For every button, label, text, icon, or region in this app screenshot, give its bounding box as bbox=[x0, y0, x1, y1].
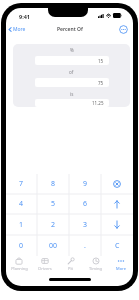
button[interactable]: . bbox=[69, 235, 101, 256]
staticText: 0 bbox=[19, 241, 24, 251]
button[interactable]: Next field bbox=[101, 214, 133, 235]
button[interactable]: Planning bbox=[6, 254, 32, 276]
staticText: Timing bbox=[89, 266, 102, 271]
button[interactable]: More bbox=[108, 254, 133, 276]
button[interactable]: 2 bbox=[37, 214, 69, 235]
staticText: 9:41 bbox=[19, 13, 30, 20]
button[interactable]: Options bbox=[119, 25, 128, 34]
staticText: is bbox=[70, 91, 74, 97]
button[interactable]: More bbox=[7, 24, 27, 35]
staticText: 11.25 bbox=[92, 100, 104, 106]
staticText: C bbox=[115, 241, 120, 251]
staticText: % bbox=[70, 47, 74, 53]
button[interactable]: 0 bbox=[6, 235, 37, 256]
staticText: 6 bbox=[83, 199, 88, 209]
staticText: 00 bbox=[49, 241, 58, 251]
button[interactable]: 6 bbox=[69, 194, 101, 214]
button[interactable]: Backspace bbox=[101, 174, 133, 194]
button[interactable]: 75 bbox=[35, 78, 109, 87]
staticText: 75 bbox=[98, 80, 104, 86]
button[interactable]: 11.25 bbox=[35, 99, 109, 107]
staticText: 3 bbox=[83, 220, 88, 230]
staticText: 9 bbox=[83, 179, 88, 189]
staticText: 5 bbox=[51, 199, 56, 209]
button[interactable]: 1 bbox=[6, 214, 37, 235]
button[interactable]: 15 bbox=[35, 56, 109, 65]
staticText: Drivers bbox=[38, 266, 52, 271]
button[interactable]: 5 bbox=[37, 194, 69, 214]
staticText: 7 bbox=[19, 179, 24, 189]
staticText: Pit bbox=[68, 266, 73, 271]
staticText: . bbox=[84, 241, 86, 251]
button[interactable]: Drivers bbox=[32, 254, 58, 276]
button[interactable]: 8 bbox=[37, 174, 69, 194]
button[interactable]: 00 bbox=[37, 235, 69, 256]
button[interactable]: 7 bbox=[6, 174, 37, 194]
staticText: Planning bbox=[11, 266, 28, 271]
button[interactable]: Pit bbox=[58, 254, 83, 276]
button[interactable]: 4 bbox=[6, 194, 37, 214]
staticText: 15 bbox=[98, 58, 104, 64]
staticText: of bbox=[69, 69, 74, 75]
staticText: More bbox=[13, 26, 26, 33]
button[interactable]: Clear bbox=[101, 235, 133, 256]
button[interactable]: 3 bbox=[69, 214, 101, 235]
staticText: More bbox=[116, 266, 126, 271]
staticText: Percent Of bbox=[57, 26, 83, 33]
button[interactable]: Timing bbox=[83, 254, 108, 276]
staticText: 4 bbox=[19, 199, 24, 209]
staticText: 1 bbox=[19, 220, 24, 230]
staticText: 8 bbox=[51, 179, 56, 189]
button[interactable]: Previous field bbox=[101, 194, 133, 214]
staticText: 2 bbox=[51, 220, 56, 230]
button[interactable]: 9 bbox=[69, 174, 101, 194]
